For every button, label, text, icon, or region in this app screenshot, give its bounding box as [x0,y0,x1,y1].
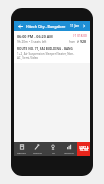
staticText: from [69,40,76,44]
staticText: DEPART [17,151,26,154]
staticText: ₹ 928 [77,39,87,44]
staticText: 06:00 PM - 06:20 AM [17,34,53,39]
button[interactable]: AC [45,142,61,156]
staticText: SEATING [64,151,74,154]
button[interactable]: RATING [29,142,45,156]
staticText: RATING [33,151,42,154]
staticText: Hitech City - Bangalore [26,24,66,29]
button[interactable]: SORT & FILTER [77,142,90,156]
staticText: AC [52,151,55,154]
staticText: ₹1 018.00 [73,34,87,38]
button[interactable]: 06:00 PM - 06:20 AM [14,31,90,63]
button[interactable]: 11 Jan [69,24,87,28]
button[interactable]: Back [17,23,24,30]
staticText: ROUTE NO. 71, SAI BUILDING - BANG [17,47,73,51]
staticText: 1+2, Air Suspension Sleeper/Seater, Non-… [17,52,75,60]
button[interactable]: DEPART [14,142,29,156]
button[interactable]: SEATING [61,142,77,156]
staticText: SORT & FILTER [79,146,89,152]
staticText: 11 Jan [70,24,80,28]
staticText: 9h 20m • 3 seats left [17,40,47,44]
